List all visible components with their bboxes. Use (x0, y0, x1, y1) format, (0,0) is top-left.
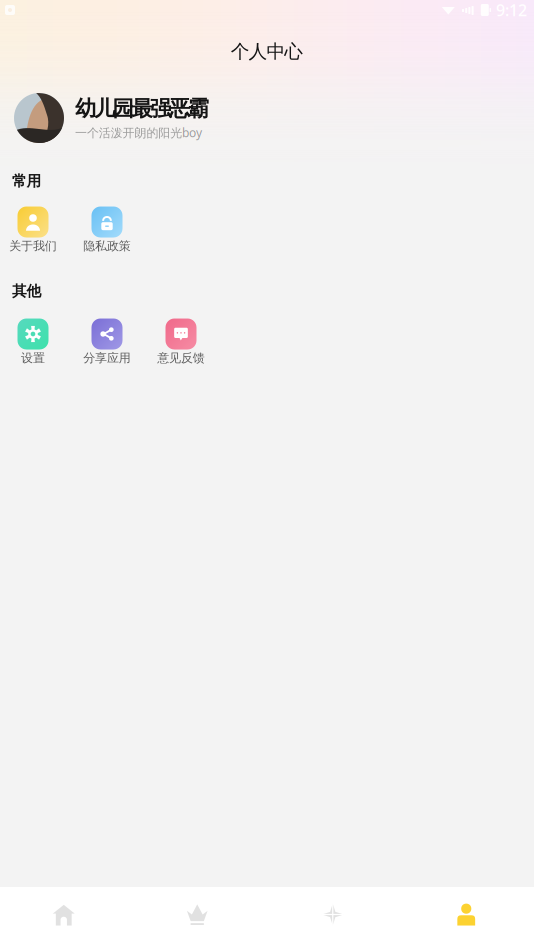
staticText: 其他 (12, 282, 42, 300)
staticText: 设置 (21, 351, 45, 365)
staticText: 分享应用 (83, 351, 131, 365)
button[interactable]: 幼儿园最强恶霸 (0, 83, 534, 143)
button[interactable]: 隐私政策 (70, 205, 144, 252)
staticText: 个人中心 (231, 40, 303, 63)
staticText: 一个活泼开朗的阳光boy (75, 125, 202, 140)
staticText: 关于我们 (9, 239, 57, 253)
staticText: 隐私政策 (83, 239, 131, 253)
button[interactable]: 意见反馈 (144, 317, 218, 364)
button[interactable]: 设置 (0, 317, 70, 364)
button[interactable]: 会员 (133, 887, 267, 952)
staticText: 9:12 (496, 0, 527, 21)
button[interactable]: 我的 (400, 887, 534, 952)
staticText: 意见反馈 (157, 351, 205, 365)
button[interactable]: 分享应用 (70, 317, 144, 364)
staticText: 幼儿园最强恶霸 (75, 95, 209, 122)
staticText: 常用 (12, 172, 42, 190)
button[interactable]: 关于我们 (0, 205, 70, 252)
button[interactable]: 首页 (0, 887, 133, 952)
